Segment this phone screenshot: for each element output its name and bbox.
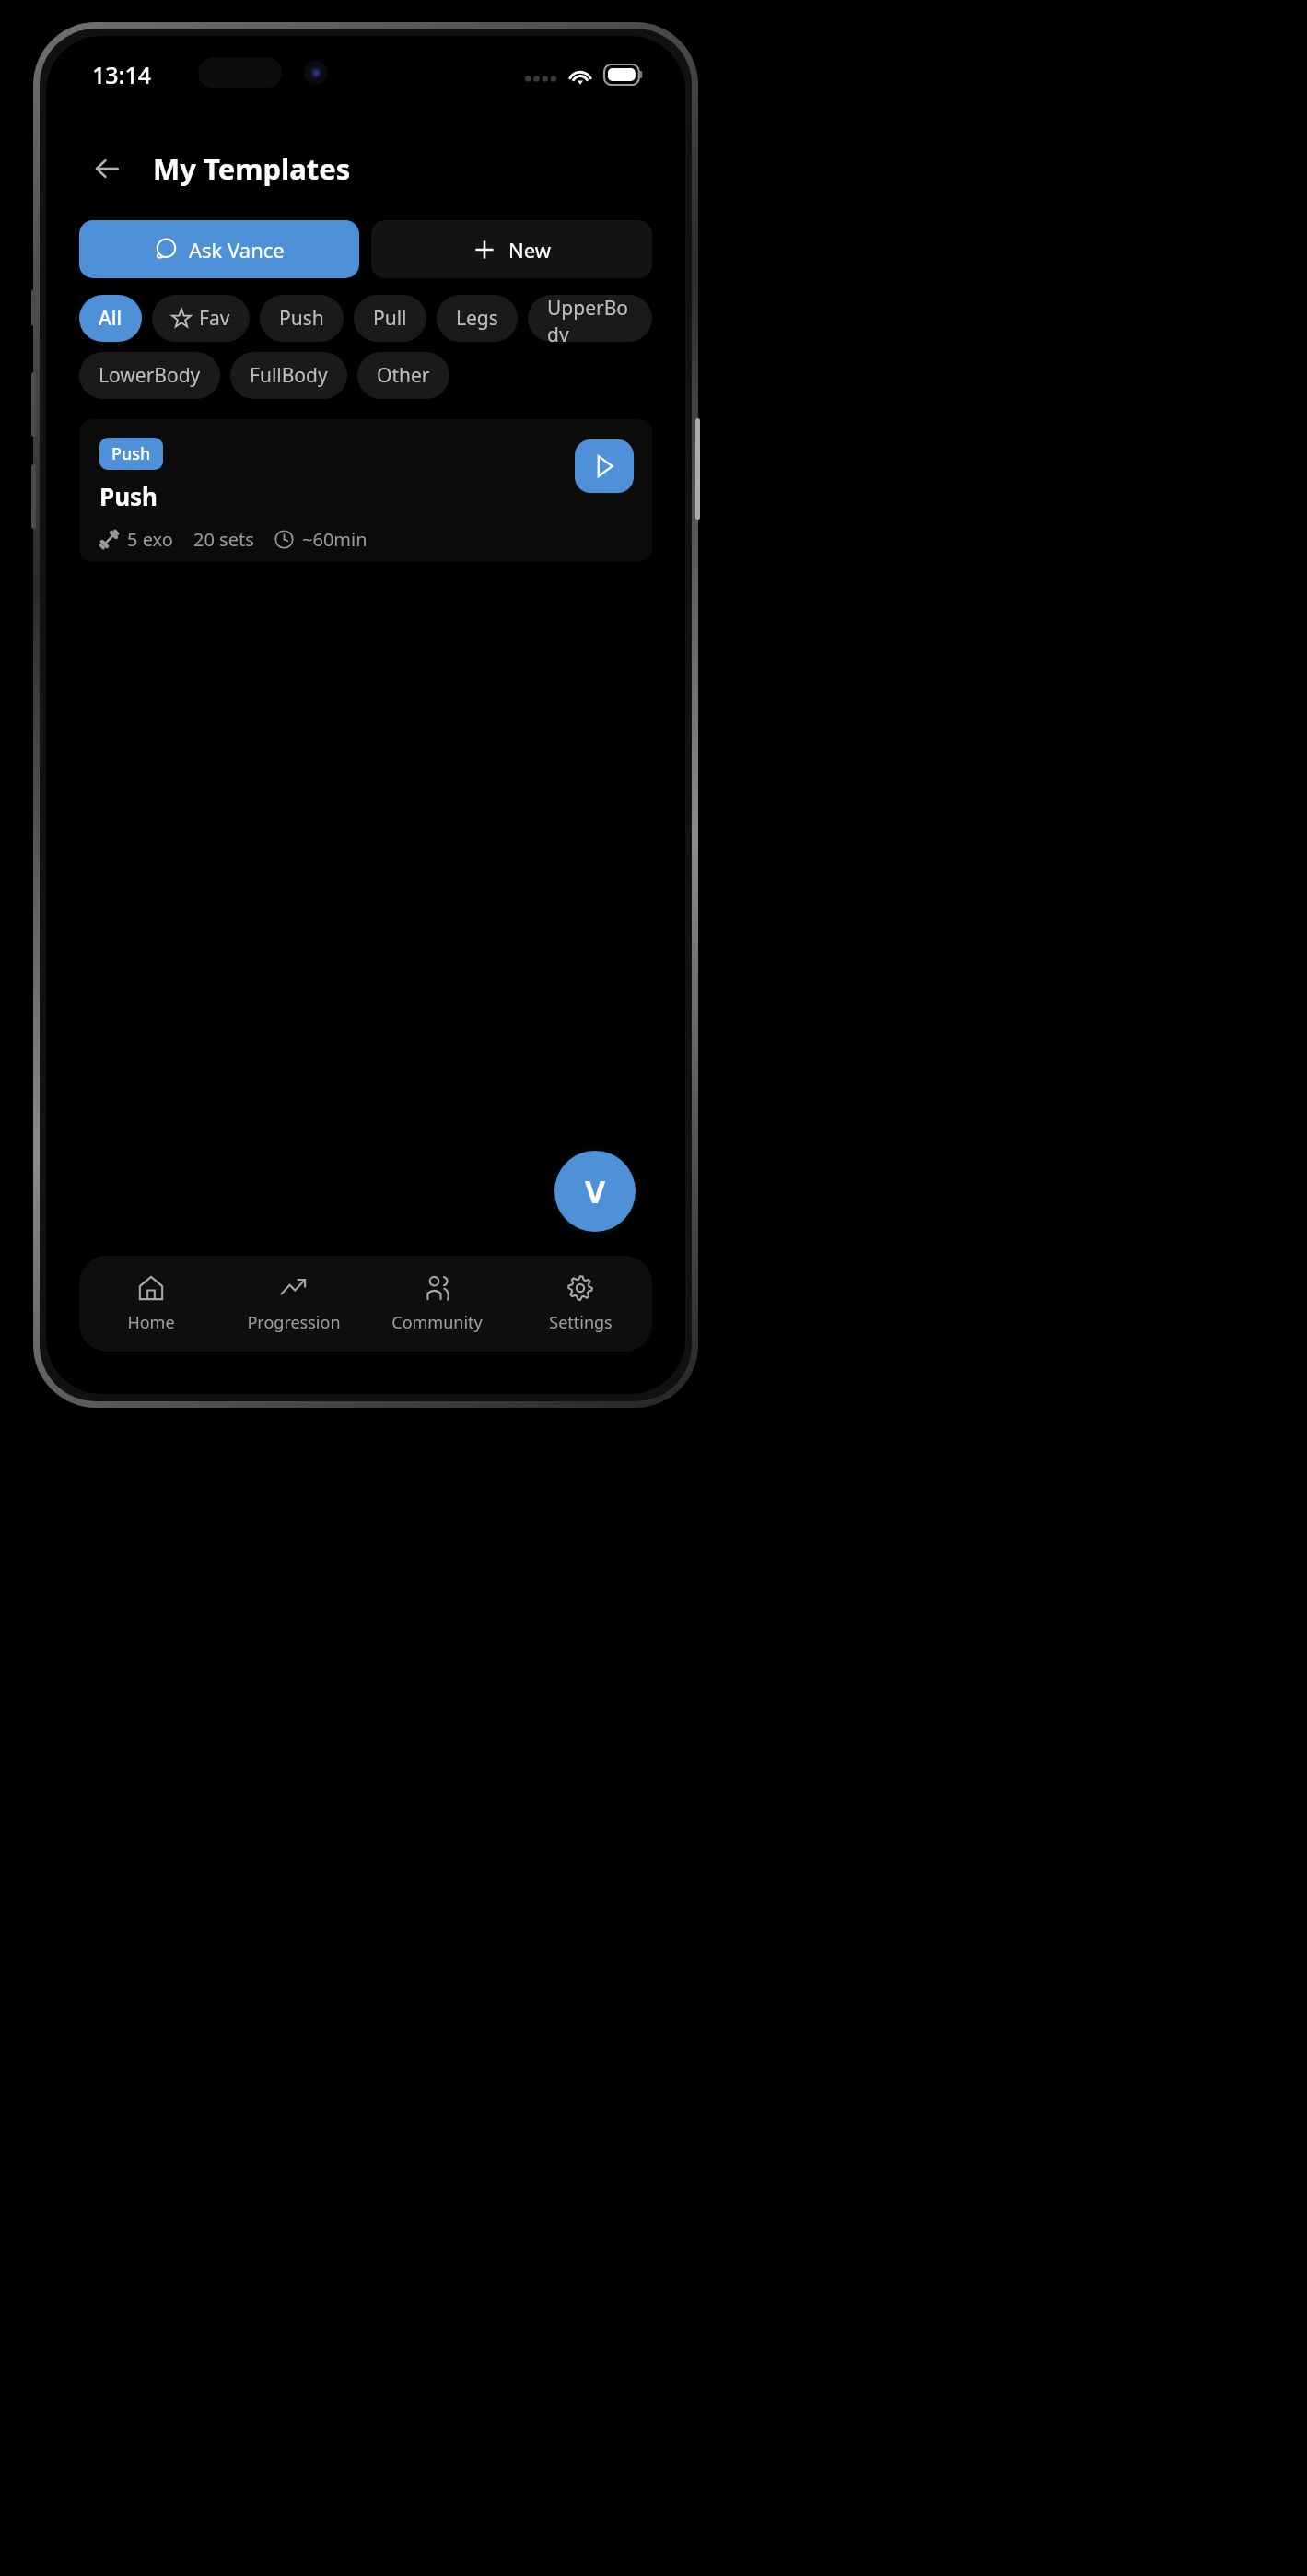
button[interactable]: Push	[260, 295, 344, 342]
staticText: New	[508, 236, 551, 263]
staticText: Settings	[549, 1311, 613, 1334]
staticText: ~60min	[302, 527, 368, 552]
button[interactable]: Ask Vance assistant	[554, 1151, 636, 1232]
staticText: LowerBody	[99, 362, 201, 389]
button[interactable]: All	[79, 295, 142, 342]
button[interactable]: Home	[79, 1262, 222, 1345]
button[interactable]: FullBody	[230, 352, 347, 399]
button[interactable]: Back	[83, 145, 131, 193]
button[interactable]: New	[371, 220, 652, 278]
button[interactable]: Start workout	[575, 439, 634, 493]
button[interactable]: Pull	[354, 295, 426, 342]
staticText: Other	[377, 362, 430, 389]
staticText: My Templates	[153, 149, 351, 188]
button[interactable]: Other	[357, 352, 449, 399]
staticText: All	[99, 305, 123, 332]
staticText: V	[585, 1170, 606, 1212]
button[interactable]: Push	[79, 419, 652, 562]
staticText: Fav	[199, 305, 230, 332]
button[interactable]: Ask Vance	[79, 220, 359, 278]
button[interactable]: Progression	[222, 1262, 365, 1345]
staticText: Push	[279, 305, 324, 332]
button[interactable]: LowerBody	[79, 352, 220, 399]
staticText: Community	[391, 1311, 483, 1334]
button[interactable]: Settings	[508, 1262, 652, 1345]
staticText: Pull	[373, 305, 407, 332]
staticText: UpperBody	[547, 295, 633, 342]
staticText: Home	[127, 1311, 175, 1334]
staticText: FullBody	[250, 362, 328, 389]
button[interactable]: Fav	[152, 295, 250, 342]
staticText: Push	[99, 480, 158, 512]
staticText: Push	[111, 442, 151, 465]
button[interactable]: Community	[365, 1262, 508, 1345]
button[interactable]: Legs	[437, 295, 518, 342]
button[interactable]: UpperBody	[528, 295, 652, 342]
staticText: Legs	[456, 305, 498, 332]
staticText: 20 sets	[193, 527, 254, 552]
staticText: 5 exo	[127, 527, 173, 552]
staticText: Progression	[247, 1311, 341, 1334]
staticText: Ask Vance	[189, 236, 285, 263]
staticText: 13:14	[92, 59, 152, 90]
